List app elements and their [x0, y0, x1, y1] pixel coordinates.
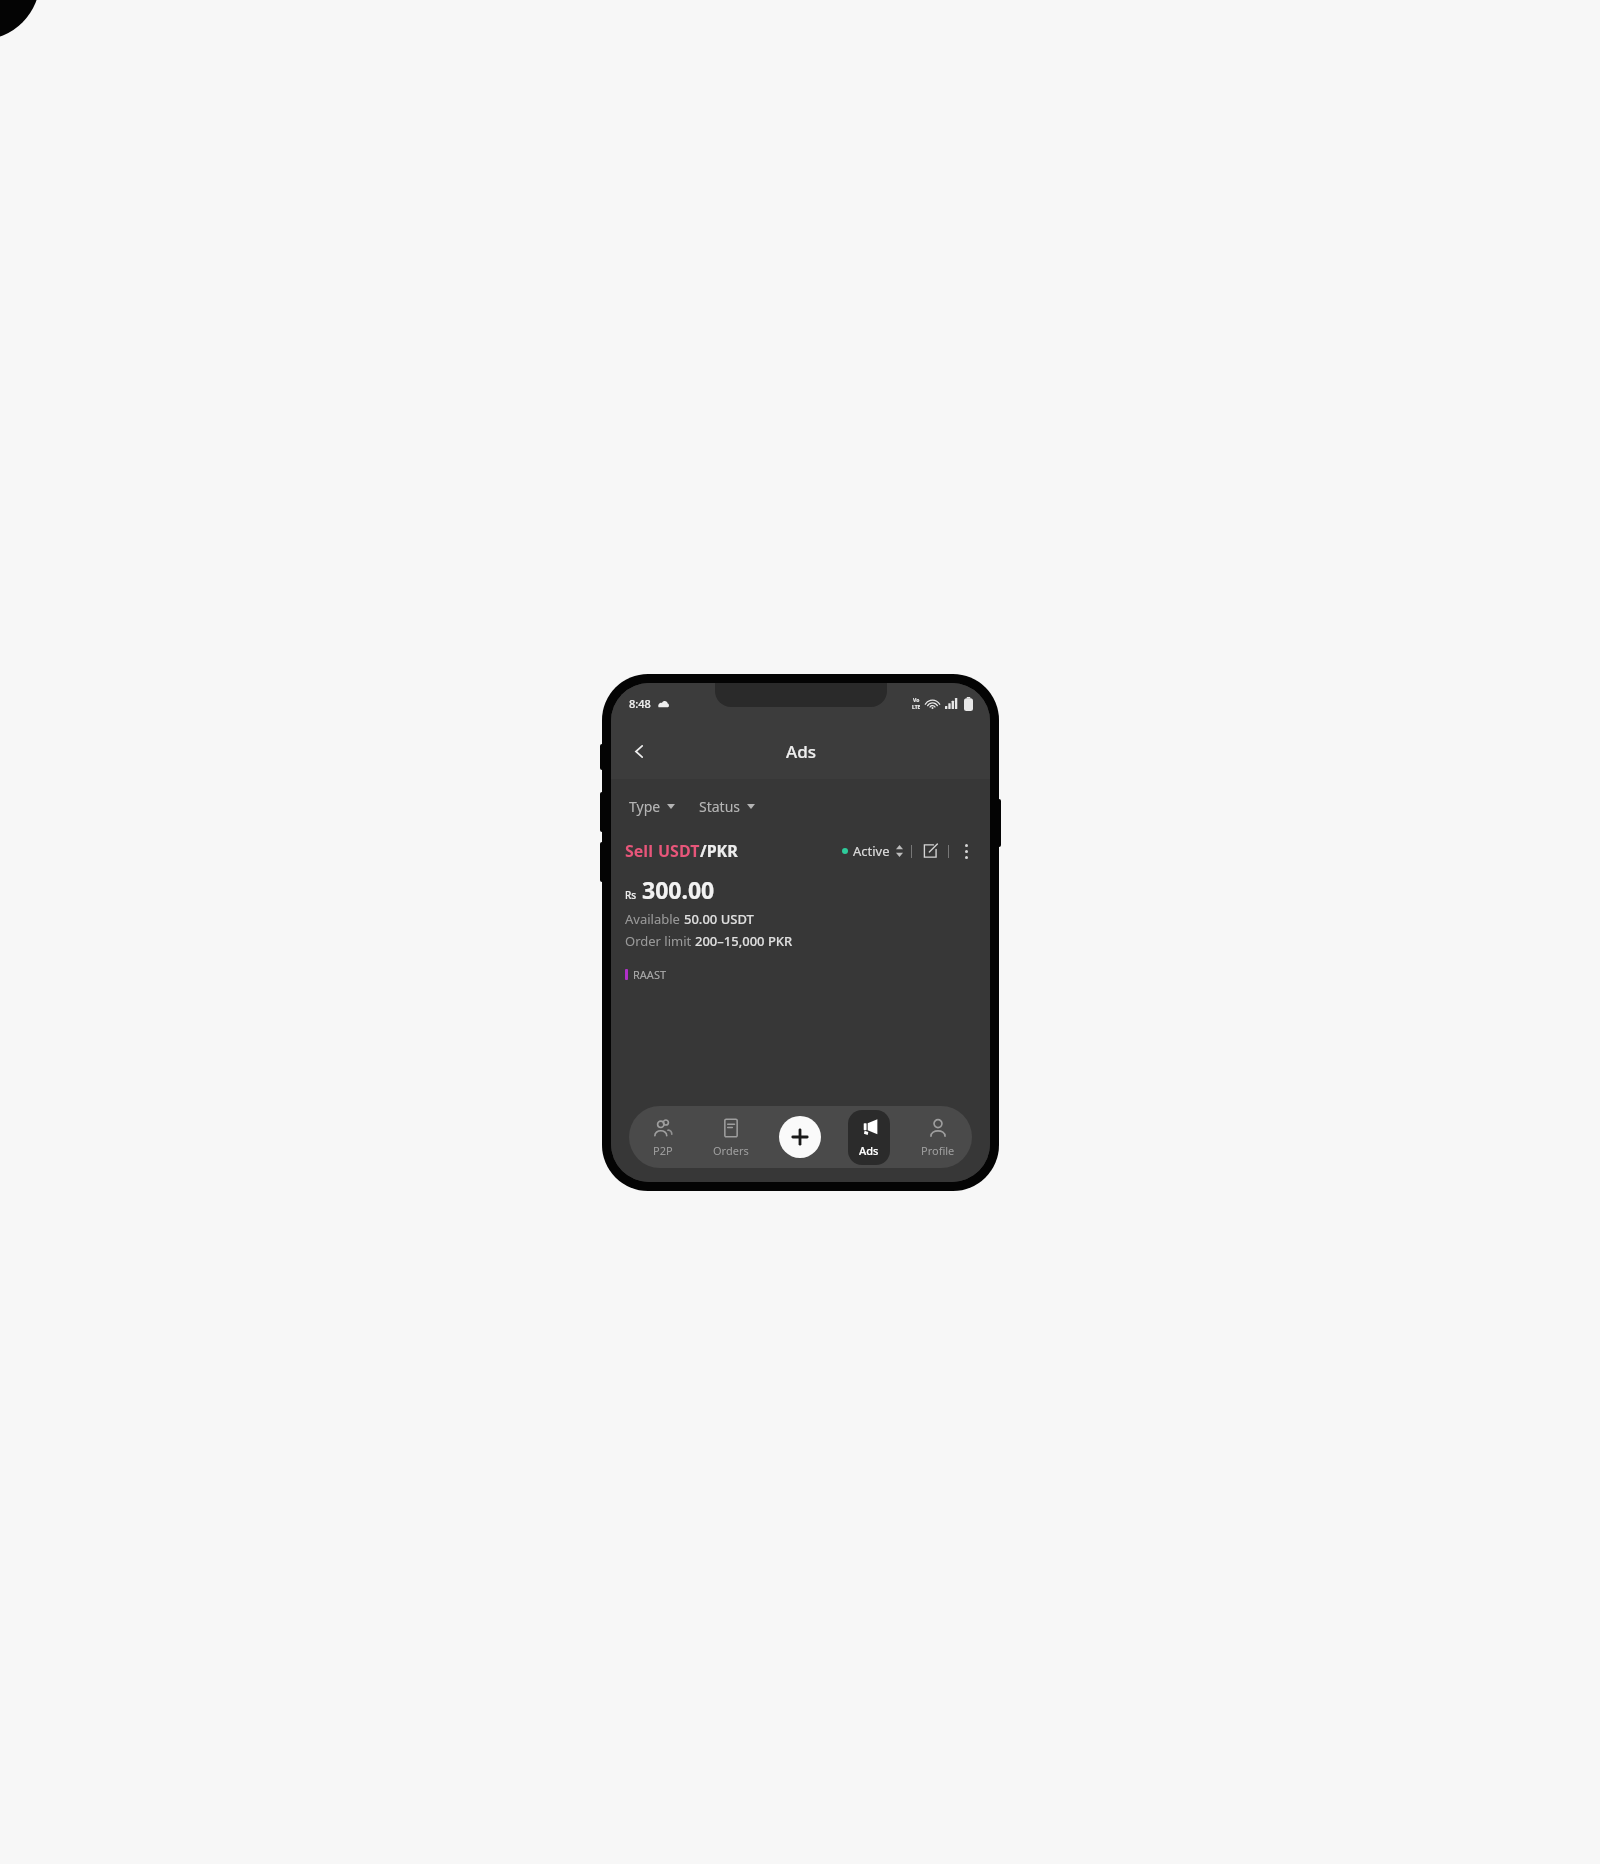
button[interactable]: Back [619, 731, 659, 771]
button[interactable]: Orders [703, 1110, 759, 1165]
staticText: 50.00 USDT [684, 910, 754, 928]
staticText: LTE [912, 704, 921, 711]
staticText: 300.00 [642, 874, 715, 905]
button[interactable]: Ads [848, 1110, 890, 1165]
button[interactable]: Type [625, 793, 679, 820]
staticText: RAAST [633, 967, 667, 982]
staticText: Orders [713, 1143, 749, 1158]
button[interactable]: More options [956, 841, 976, 861]
staticText: 8:48 [629, 696, 651, 711]
button[interactable]: Status [695, 793, 759, 820]
button[interactable]: Edit ad [919, 840, 941, 862]
staticText: P2P [653, 1143, 673, 1158]
staticText: Sell [625, 840, 658, 862]
staticText: Rs [625, 888, 637, 902]
staticText: Ads [859, 1143, 879, 1158]
staticText: USDT [658, 840, 700, 862]
staticText: Ads [786, 740, 816, 763]
staticText: Profile [921, 1143, 955, 1158]
button[interactable]: Create ad [779, 1116, 821, 1158]
button[interactable]: P2P [642, 1110, 684, 1165]
staticText: Order limit [625, 932, 695, 950]
staticText: Vo [913, 697, 920, 704]
staticText: Status [699, 797, 741, 816]
button[interactable]: Active [840, 840, 905, 862]
staticText: Type [629, 797, 661, 816]
staticText: Active [853, 842, 890, 860]
button[interactable]: Profile [911, 1110, 965, 1165]
staticText: /PKR [700, 840, 738, 862]
staticText: 200–15,000 PKR [695, 932, 793, 950]
staticText: Available [625, 910, 684, 928]
button[interactable]: Sell [611, 836, 990, 986]
